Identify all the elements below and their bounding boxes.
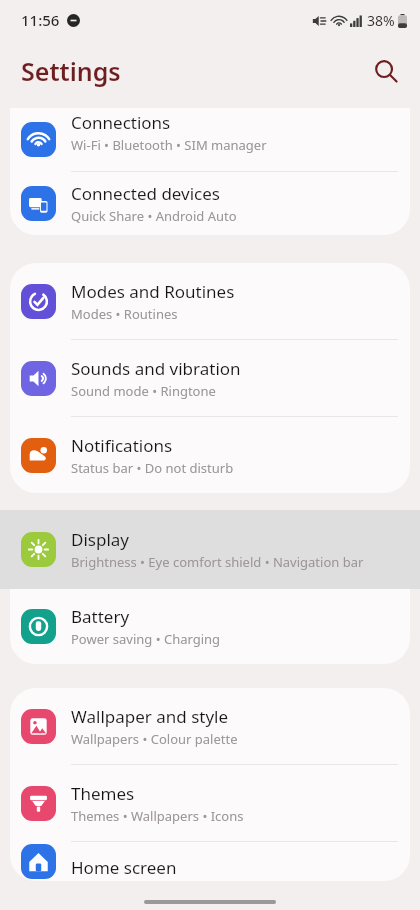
staticText: Home screen bbox=[71, 856, 177, 879]
staticText: Settings bbox=[21, 54, 121, 88]
button[interactable]: Wallpaper and style bbox=[10, 688, 410, 764]
button[interactable]: Connections bbox=[10, 108, 410, 171]
staticText: Modes • Routines bbox=[71, 305, 178, 323]
staticText: 38% bbox=[367, 11, 395, 30]
staticText: Status bar • Do not disturb bbox=[71, 459, 234, 477]
staticText: Wallpapers • Colour palette bbox=[71, 730, 238, 748]
button[interactable]: Modes and Routines bbox=[10, 263, 410, 339]
button[interactable]: Display bbox=[0, 510, 420, 589]
staticText: Connections bbox=[71, 111, 171, 134]
staticText: Themes • Wallpapers • Icons bbox=[71, 807, 244, 825]
staticText: Sound mode • Ringtone bbox=[71, 382, 216, 400]
button[interactable]: Search bbox=[362, 47, 410, 95]
staticText: Brightness • Eye comfort shield • Naviga… bbox=[71, 553, 364, 571]
button[interactable]: Connected devices bbox=[10, 172, 410, 235]
button[interactable]: Home screen bbox=[10, 842, 410, 881]
button[interactable]: Sounds and vibration bbox=[10, 340, 410, 416]
staticText: Battery bbox=[71, 605, 130, 628]
button[interactable]: Themes bbox=[10, 765, 410, 841]
button[interactable]: Battery bbox=[10, 589, 410, 664]
button[interactable]: Notifications bbox=[10, 417, 410, 493]
staticText: Power saving • Charging bbox=[71, 630, 221, 648]
staticText: 11:56 bbox=[21, 10, 60, 30]
staticText: Quick Share • Android Auto bbox=[71, 207, 237, 225]
staticText: Sounds and vibration bbox=[71, 357, 241, 380]
staticText: Wi-Fi • Bluetooth • SIM manager bbox=[71, 136, 267, 154]
staticText: Modes and Routines bbox=[71, 280, 235, 303]
staticText: Display bbox=[71, 528, 129, 551]
staticText: Notifications bbox=[71, 434, 173, 457]
staticText: Connected devices bbox=[71, 182, 221, 205]
staticText: Themes bbox=[71, 782, 135, 805]
staticText: Wallpaper and style bbox=[71, 705, 229, 728]
